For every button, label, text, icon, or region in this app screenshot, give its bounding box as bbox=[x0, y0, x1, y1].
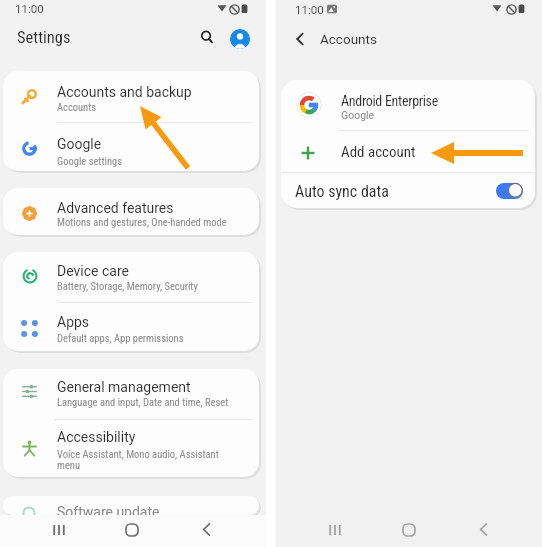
staticText: 11:00 bbox=[15, 2, 44, 15]
button[interactable] bbox=[3, 369, 259, 419]
button[interactable] bbox=[3, 71, 259, 121]
staticText: Advanced features bbox=[57, 200, 174, 216]
button[interactable] bbox=[3, 302, 259, 351]
button[interactable] bbox=[194, 518, 218, 542]
staticText: Auto sync data bbox=[295, 182, 389, 201]
staticText: Settings bbox=[17, 28, 71, 47]
staticText: 11:00 bbox=[295, 3, 324, 16]
button[interactable] bbox=[230, 29, 250, 49]
staticText: Motions and gestures, One-handed mode bbox=[57, 216, 227, 228]
button[interactable] bbox=[281, 172, 535, 208]
staticText: Accounts and backup bbox=[57, 84, 192, 100]
button[interactable] bbox=[119, 518, 143, 542]
button[interactable] bbox=[3, 252, 259, 302]
button[interactable] bbox=[288, 28, 311, 50]
button[interactable] bbox=[281, 130, 535, 172]
staticText: General management bbox=[57, 379, 191, 395]
staticText: Device care bbox=[57, 263, 129, 279]
staticText: Accessibility bbox=[57, 429, 136, 445]
staticText: Default apps, App permissions bbox=[57, 332, 184, 344]
staticText: Voice Assistant, Mono audio, Assistant bbox=[57, 448, 219, 460]
button[interactable] bbox=[281, 80, 535, 130]
button[interactable] bbox=[3, 419, 259, 477]
staticText: Add account bbox=[341, 143, 416, 161]
staticText: Google bbox=[341, 109, 375, 121]
staticText: Software update bbox=[57, 504, 160, 520]
staticText: Google bbox=[57, 136, 102, 152]
staticText: Accounts bbox=[57, 101, 97, 113]
button[interactable] bbox=[47, 518, 71, 542]
button[interactable] bbox=[3, 496, 259, 515]
staticText: Apps bbox=[57, 314, 90, 330]
button[interactable] bbox=[3, 121, 259, 171]
staticText: Battery, Storage, Memory, Security bbox=[57, 280, 198, 292]
button[interactable] bbox=[3, 188, 259, 235]
staticText: Accounts bbox=[320, 31, 377, 47]
staticText: Android Enterprise bbox=[341, 93, 438, 109]
staticText: Google settings bbox=[57, 155, 123, 167]
staticText: menu bbox=[57, 459, 80, 471]
staticText: Language and input, Date and time, Reset bbox=[57, 396, 229, 408]
button[interactable] bbox=[496, 183, 523, 199]
